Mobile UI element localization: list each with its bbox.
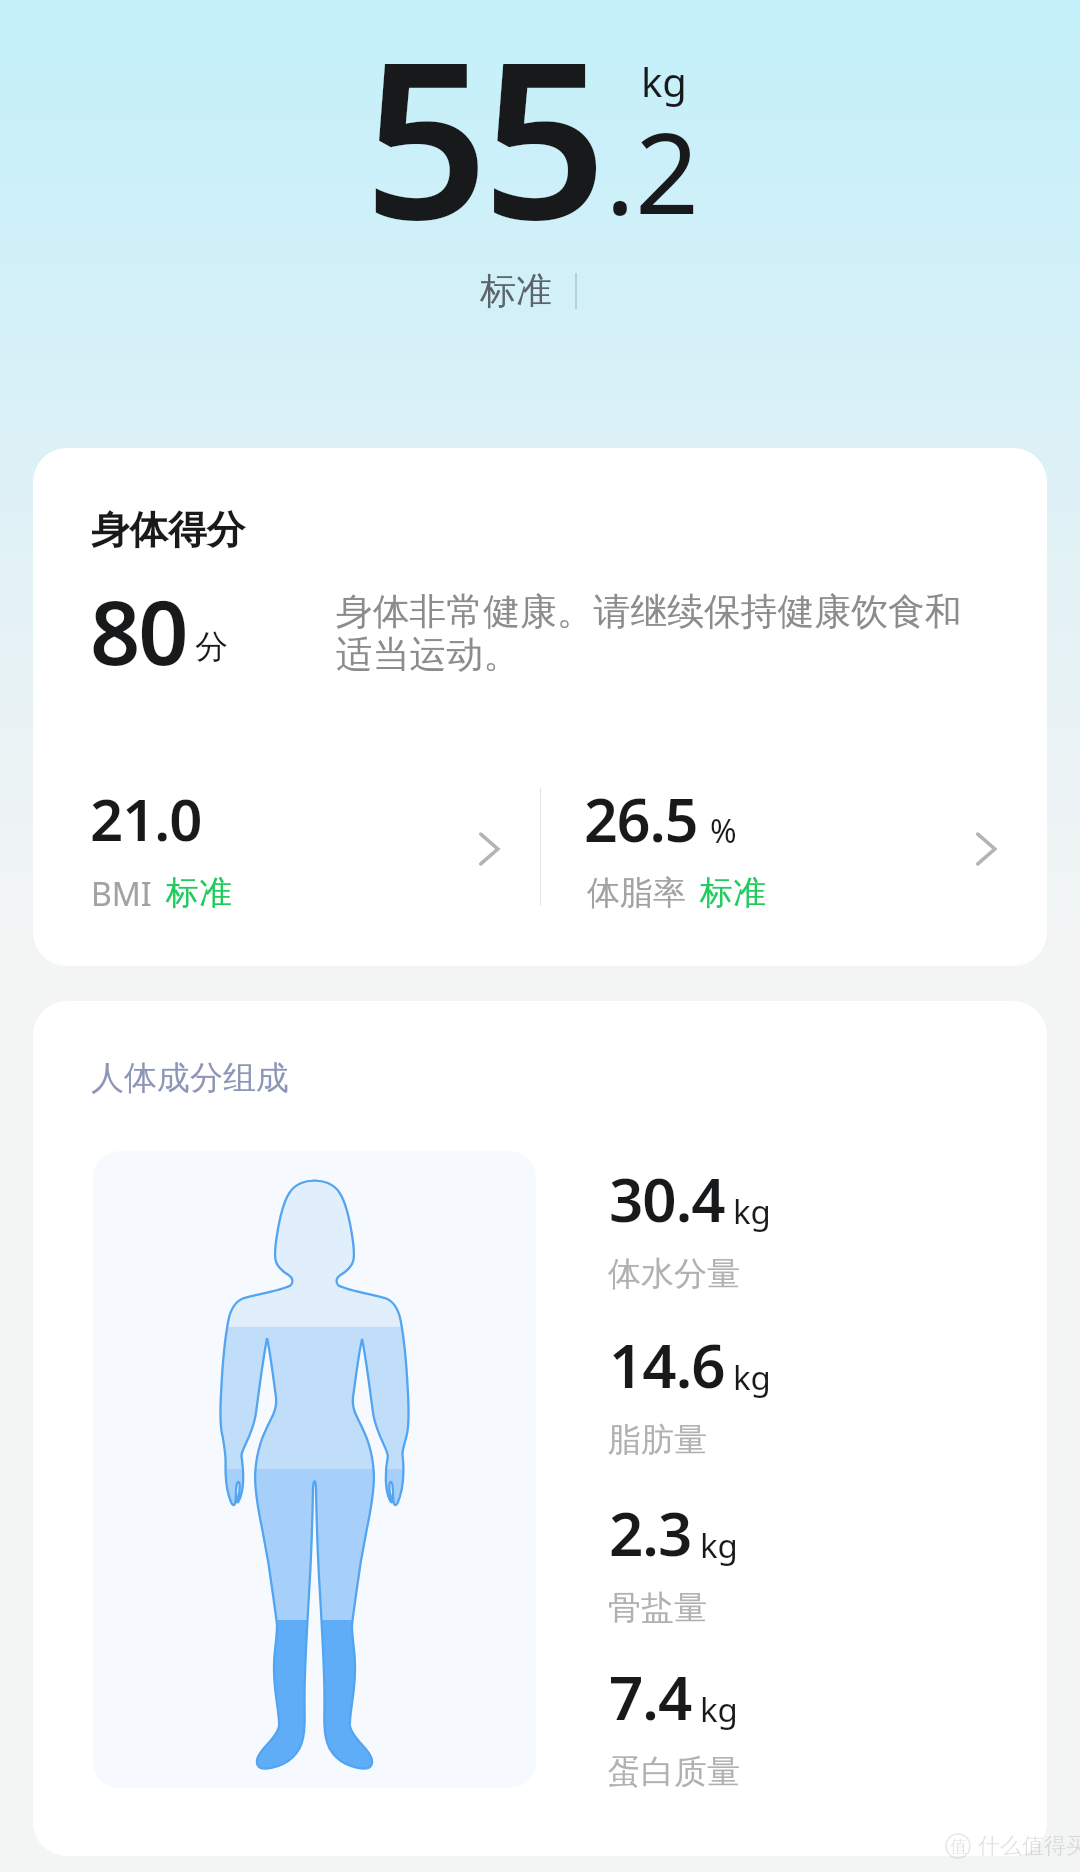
staticText: 身体得分 xyxy=(91,506,245,555)
button[interactable]: 2.3 xyxy=(599,1480,1019,1626)
staticText: 标准 xyxy=(480,268,552,313)
staticText: 7.4 xyxy=(609,1656,692,1738)
button[interactable]: 30.4 xyxy=(599,1146,1019,1292)
staticText: 体水分量 xyxy=(608,1253,740,1295)
other: 查看详情 xyxy=(971,832,1005,866)
staticText: % xyxy=(710,809,737,853)
staticText: 体脂率 xyxy=(587,872,686,914)
staticText: 身体非常健康。请继续保持健康饮食和 适当运动。 xyxy=(336,589,962,678)
staticText: kg xyxy=(700,1687,738,1732)
staticText: 骨盐量 xyxy=(608,1587,707,1629)
staticText: kg xyxy=(641,54,687,108)
button[interactable]: 26.5 xyxy=(541,768,1047,928)
staticText: 脂肪量 xyxy=(608,1419,707,1461)
staticText: 值 xyxy=(950,1836,967,1857)
staticText: 55 xyxy=(364,0,601,283)
staticText: 标准 xyxy=(166,872,232,914)
staticText: 30.4 xyxy=(609,1158,725,1240)
staticText: 80 xyxy=(90,571,187,691)
button[interactable]: 14.6 xyxy=(599,1312,1019,1458)
staticText: kg xyxy=(700,1523,738,1568)
staticText: kg xyxy=(733,1355,771,1400)
staticText: kg xyxy=(733,1189,771,1234)
staticText: 标准 xyxy=(700,872,766,914)
button[interactable]: 21.0 xyxy=(33,768,540,928)
staticText: 分 xyxy=(195,626,228,668)
staticText: .2 xyxy=(605,94,700,247)
button[interactable]: 7.4 xyxy=(599,1644,1019,1790)
other: 查看详情 xyxy=(474,832,508,866)
staticText: 什么值得买 xyxy=(978,1832,1080,1860)
staticText: 蛋白质量 xyxy=(608,1751,740,1793)
staticText: 21.0 xyxy=(90,779,202,858)
staticText: 26.5 xyxy=(584,779,698,859)
staticText: 2.3 xyxy=(609,1492,692,1574)
staticText: 人体成分组成 xyxy=(91,1057,289,1099)
staticText: BMI xyxy=(91,872,152,916)
staticText: 14.6 xyxy=(609,1324,725,1406)
